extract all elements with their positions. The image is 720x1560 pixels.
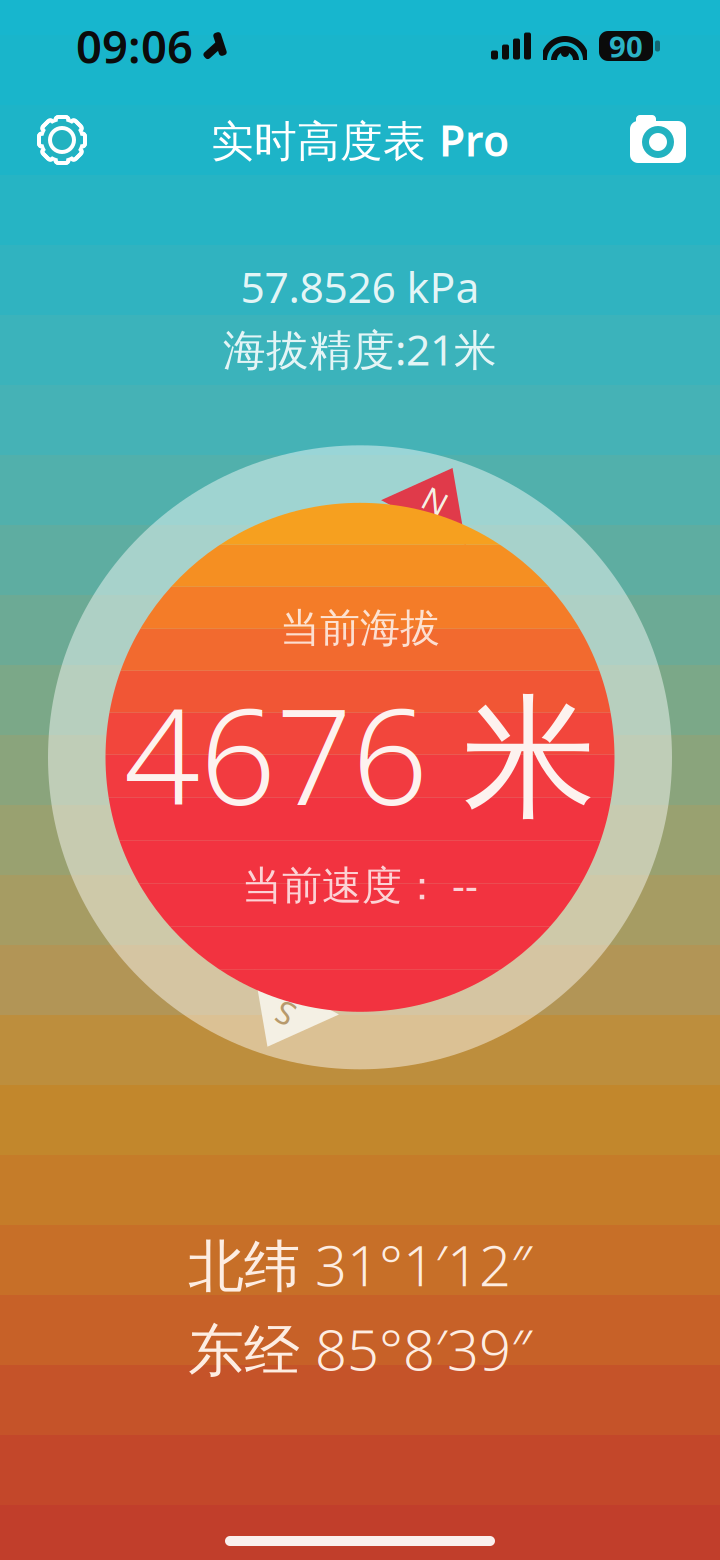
button[interactable]: 设置	[18, 100, 106, 180]
staticText: 90	[609, 26, 643, 65]
staticText: 北纬 31°1′12″	[188, 1227, 532, 1302]
staticText: 当前海拔	[280, 604, 440, 653]
button[interactable]: 相机	[614, 100, 702, 180]
staticText: 当前速度： --	[242, 858, 478, 911]
staticText: 09:06	[76, 16, 193, 76]
staticText: 东经 85°8′39″	[188, 1312, 532, 1386]
staticText: 实时高度表 Pro	[211, 112, 509, 168]
staticText: 海拔精度:21米	[223, 321, 497, 377]
staticText: 4676 米	[124, 665, 596, 842]
staticText: S	[273, 1004, 291, 1047]
staticText: N	[426, 480, 450, 523]
staticText: 57.8526 kPa	[240, 258, 479, 315]
